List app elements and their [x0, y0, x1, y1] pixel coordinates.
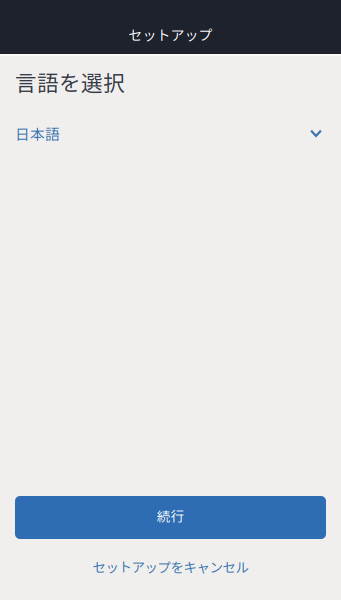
button[interactable]: セットアップをキャンセル	[0, 539, 341, 600]
staticText: 言語を選択	[15, 66, 125, 97]
staticText: 続行	[156, 506, 184, 525]
button[interactable]: 日本語	[0, 97, 341, 143]
staticText: 日本語	[15, 123, 60, 144]
button[interactable]: 続行	[0, 496, 341, 539]
staticText: セットアップ	[128, 24, 212, 45]
staticText: セットアップをキャンセル	[92, 557, 248, 576]
